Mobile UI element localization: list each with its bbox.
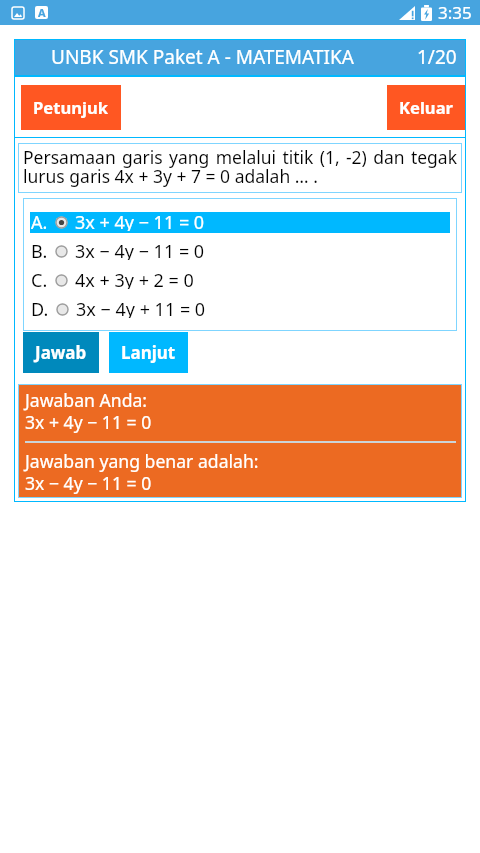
staticText: B. [31,239,48,260]
staticText: Jawaban yang benar adalah: 3x − 4y − 11 … [25,449,259,495]
staticText: A. [31,210,48,231]
staticText: UNBK SMK Paket A - MATEMATIKA [51,44,354,70]
staticText: C. [31,268,48,289]
other: Keyboard [35,6,48,19]
staticText: 3:35 [438,1,472,24]
staticText: A [38,5,46,18]
button[interactable]: B. [30,241,450,262]
button[interactable]: Petunjuk [21,85,121,130]
staticText: Jawaban Anda: 3x + 4y − 11 = 0 [25,388,152,434]
staticText: Petunjuk [33,96,109,119]
other: Screenshot [12,7,24,19]
button[interactable]: C. [30,270,450,291]
button[interactable]: D. [30,299,450,320]
staticText: D. [31,297,49,318]
staticText: 3x + 4y − 11 = 0 [75,210,205,231]
staticText: 1/20 [417,44,457,70]
staticText: 4x + 3y + 2 = 0 [75,268,194,289]
staticText: Lanjut [121,341,176,364]
staticText: 3x − 4y − 11 = 0 [75,239,205,260]
button[interactable]: A. [30,212,450,233]
staticText: Jawab [35,341,87,364]
staticText: 3x − 4y + 11 = 0 [76,297,206,318]
staticText: Keluar [399,96,454,119]
staticText: Persamaan garis yang melalui titik (1, -… [23,145,457,188]
button[interactable]: Jawab [23,332,99,373]
button[interactable]: Keluar [387,85,466,130]
button[interactable]: Lanjut [109,332,188,373]
